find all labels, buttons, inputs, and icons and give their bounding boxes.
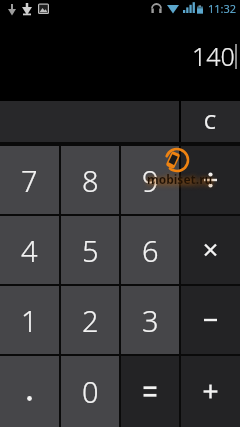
button[interactable] [181, 356, 240, 427]
button[interactable] [121, 356, 179, 427]
staticText: 2 [82, 301, 99, 340]
staticText: 9 [142, 161, 159, 200]
staticText: 1 [21, 301, 38, 340]
staticText: 7 [21, 161, 38, 200]
button[interactable]: 4 [0, 216, 59, 284]
button[interactable] [181, 146, 240, 214]
button[interactable] [181, 286, 240, 354]
staticText: 11:32 [208, 1, 237, 16]
staticText: mobiset.ru [147, 171, 213, 187]
staticText: 4 [21, 231, 38, 270]
button[interactable]: 9 [121, 146, 179, 214]
button[interactable]: 8 [61, 146, 119, 214]
staticText: C [204, 109, 217, 135]
staticText: 140 [192, 39, 235, 73]
staticText: 3 [142, 301, 159, 340]
staticText: 0 [82, 372, 99, 411]
button[interactable]: 7 [0, 146, 59, 214]
button[interactable]: 5 [61, 216, 119, 284]
button[interactable]: 3 [121, 286, 179, 354]
button[interactable] [181, 216, 240, 284]
button[interactable]: 2 [61, 286, 119, 354]
button[interactable]: 6 [121, 216, 179, 284]
button[interactable]: 1 [0, 286, 59, 354]
button[interactable]: C [181, 101, 240, 142]
staticText: 8 [82, 161, 99, 200]
staticText: 5 [82, 231, 99, 270]
staticText: 6 [142, 231, 159, 270]
button[interactable] [0, 356, 59, 427]
button[interactable]: 0 [61, 356, 119, 427]
